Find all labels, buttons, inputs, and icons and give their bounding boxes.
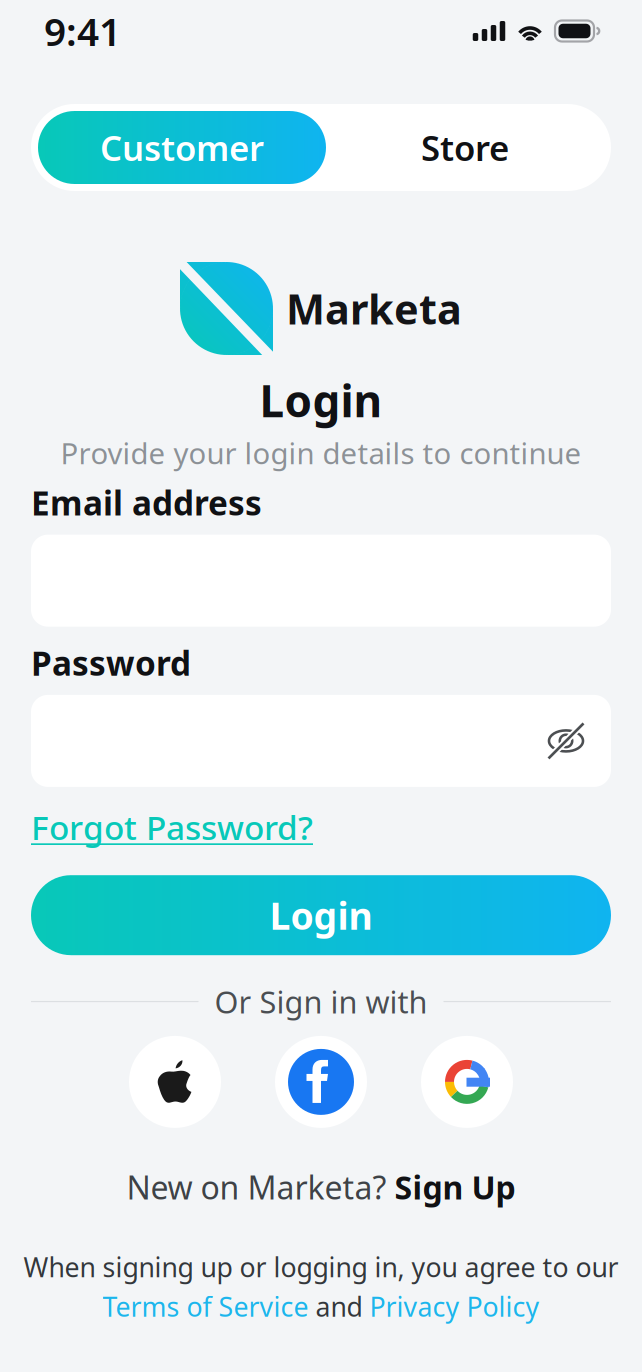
staticText: Forgot Password? (31, 805, 313, 849)
staticText: Customer (100, 124, 264, 170)
staticText: Sign Up (394, 1166, 515, 1208)
button[interactable]: Privacy Policy (369, 1289, 539, 1324)
button[interactable]: Sign in with Facebook (275, 1036, 367, 1128)
button[interactable]: Sign in with Apple (129, 1036, 221, 1128)
staticText: Provide your login details to continue (60, 433, 581, 472)
button[interactable]: Store (326, 111, 604, 184)
button[interactable]: Login (31, 875, 611, 955)
staticText: 9:41 (44, 5, 121, 57)
button[interactable]: Terms of Service (102, 1289, 308, 1324)
staticText: Marketa (286, 281, 462, 336)
button[interactable]: New on Marketa? (126, 1166, 515, 1208)
staticText: Password (31, 641, 191, 685)
staticText: When signing up or logging in, you agree… (23, 1249, 618, 1285)
staticText: Or Sign in with (214, 981, 427, 1022)
staticText: Store (421, 124, 509, 170)
staticText: Login (259, 371, 382, 429)
button[interactable]: Customer (38, 111, 326, 184)
staticText: New on Marketa? (126, 1166, 394, 1208)
staticText: Privacy Policy (369, 1289, 539, 1324)
staticText: Login (269, 890, 372, 940)
staticText: Terms of Service (102, 1289, 308, 1324)
button[interactable]: Forgot Password? (31, 805, 313, 849)
staticText: Email address (31, 480, 262, 525)
button[interactable]: Sign in with Google (421, 1036, 513, 1128)
staticText: and (308, 1289, 369, 1324)
